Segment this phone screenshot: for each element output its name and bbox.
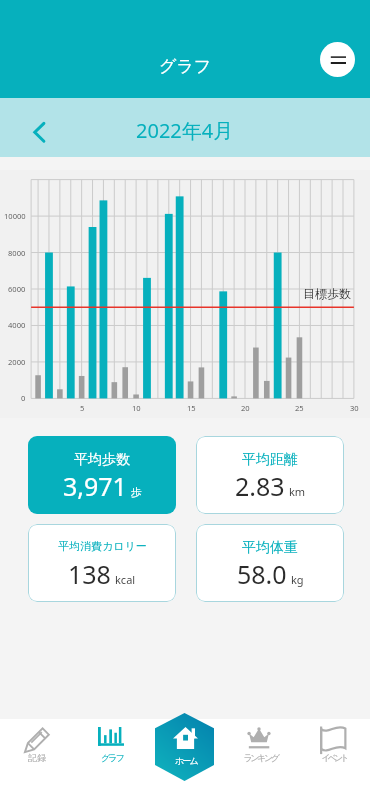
staticText: 10000 [4, 211, 26, 221]
staticText: kg [291, 572, 304, 587]
staticText: 30 [350, 403, 359, 413]
button[interactable]: ランキング [222, 719, 296, 800]
staticText: kcal [115, 572, 136, 587]
staticText: 138 [68, 557, 111, 591]
button[interactable]: 平均消費カロリー [28, 524, 176, 602]
staticText: 2.83 [235, 469, 285, 503]
staticText: 4000 [8, 320, 26, 330]
staticText: グラフ [101, 752, 123, 763]
staticText: イベント [321, 752, 347, 763]
staticText: 20 [241, 403, 250, 413]
button[interactable]: 平均歩数 [28, 436, 176, 514]
staticText: 平均歩数 [74, 451, 130, 469]
button[interactable]: 記録 [0, 719, 74, 800]
staticText: 5 [80, 403, 85, 413]
staticText: 記録 [28, 752, 46, 763]
button[interactable]: 平均距離 [196, 436, 344, 514]
button[interactable]: Menu [320, 42, 355, 77]
staticText: 58.0 [237, 557, 287, 591]
staticText: ランキング [243, 752, 278, 763]
staticText: 25 [295, 403, 304, 413]
staticText: 15 [187, 403, 196, 413]
staticText: 0 [21, 393, 26, 403]
staticText: 10 [132, 403, 141, 413]
staticText: 3,971 [63, 469, 127, 503]
staticText: 平均体重 [242, 539, 298, 557]
staticText: 目標歩数 [303, 286, 351, 301]
staticText: 8000 [8, 248, 26, 258]
button[interactable]: グラフ [74, 719, 148, 800]
button[interactable]: Previous month [27, 117, 51, 145]
button[interactable]: Home [155, 713, 214, 781]
button[interactable]: イベント [296, 719, 370, 800]
staticText: ホーム [175, 755, 197, 766]
staticText: km [289, 484, 306, 499]
button[interactable]: 平均体重 [196, 524, 344, 602]
staticText: 平均消費カロリー [58, 539, 147, 553]
staticText: 2022年4月 [136, 117, 234, 144]
staticText: グラフ [159, 56, 212, 77]
staticText: 2000 [8, 357, 26, 367]
staticText: 平均距離 [242, 451, 298, 469]
staticText: 歩 [131, 485, 142, 499]
staticText: 6000 [8, 284, 26, 294]
